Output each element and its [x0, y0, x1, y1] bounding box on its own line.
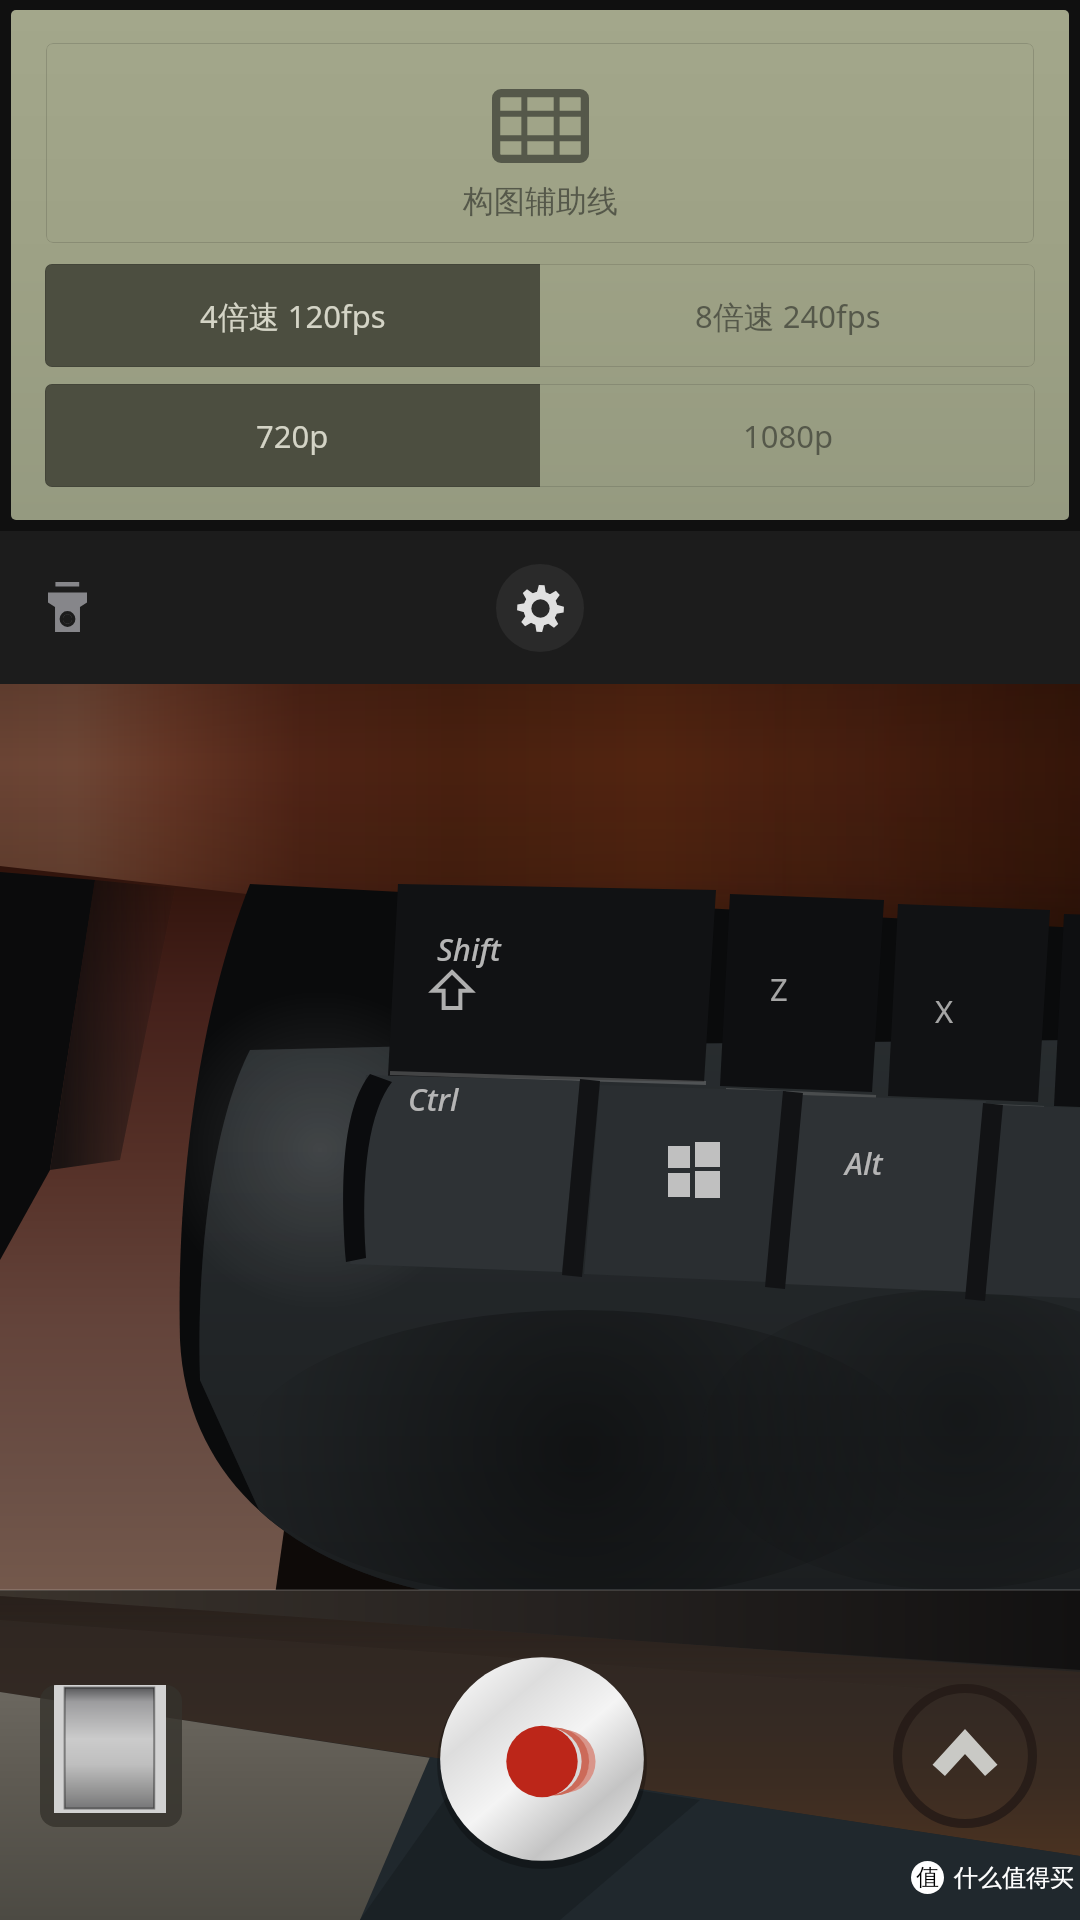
button[interactable]: 8倍速 240fps	[540, 264, 1035, 367]
staticText: 值	[916, 1863, 939, 1892]
staticText: 4倍速 120fps	[200, 295, 386, 337]
button[interactable]: 4倍速 120fps	[45, 264, 540, 367]
button[interactable]: Expand controls	[894, 1685, 1036, 1827]
staticText: 8倍速 240fps	[695, 295, 881, 337]
staticText: Ctrl	[408, 1078, 459, 1120]
button[interactable]: 构图辅助线	[46, 43, 1034, 243]
staticText: Shift	[437, 928, 501, 970]
button[interactable]: 720p	[45, 384, 540, 487]
button[interactable]: Record	[437, 1654, 647, 1864]
button[interactable]: Gallery	[40, 1685, 182, 1827]
button[interactable]: 1080p	[540, 384, 1035, 487]
staticText: X	[935, 990, 954, 1032]
button[interactable]: Settings	[496, 564, 584, 652]
staticText: Alt	[845, 1142, 883, 1184]
staticText: 720p	[256, 415, 329, 457]
staticText: 构图辅助线	[463, 182, 618, 221]
staticText: Z	[770, 968, 788, 1010]
staticText: 1080p	[743, 415, 833, 457]
staticText: 什么值得买	[954, 1863, 1074, 1893]
button[interactable]: Torch	[29, 565, 105, 649]
